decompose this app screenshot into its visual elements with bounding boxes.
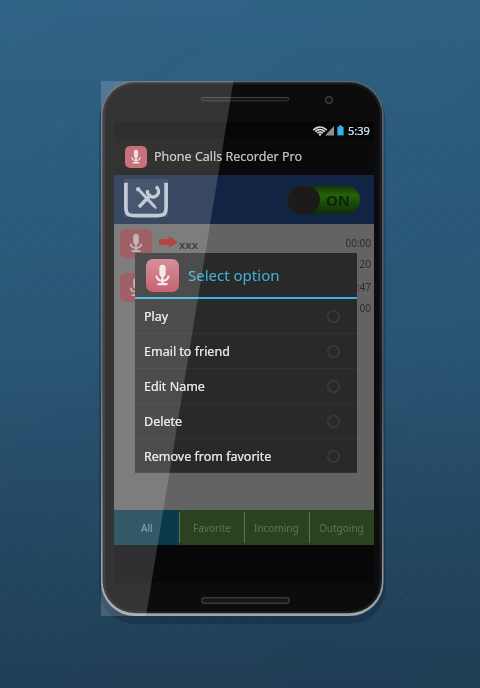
staticText: Phone Calls Recorder Pro [154,148,302,165]
button[interactable]: Favorite [179,510,244,545]
button[interactable]: ON [287,186,360,214]
staticText: 20 [359,257,371,271]
staticText: Favorite [193,521,231,535]
staticText: xxx [179,237,199,252]
button[interactable]: 01:47 [114,268,374,312]
staticText: Incoming [254,521,299,535]
button[interactable]: Remove from favorite [135,439,357,473]
button[interactable]: Play [135,299,357,334]
button[interactable]: xxx [114,224,374,268]
button[interactable]: Phone Calls Recorder Pro [114,138,374,175]
staticText: 00:00 [345,236,371,250]
staticText: All [141,521,153,535]
button[interactable]: Edit Name [135,369,357,404]
button[interactable]: Delete [135,404,357,439]
staticText: Remove from favorite [144,448,272,465]
staticText: 01:47 [345,280,371,294]
staticText: 5:39 [348,123,370,138]
staticText: Select option [188,265,280,285]
staticText: Outgoing [319,521,364,535]
staticText: ON [326,190,351,210]
button[interactable]: Outgoing [309,510,374,545]
staticText: 00 [359,301,371,315]
staticText: Play [144,308,169,325]
button[interactable]: Settings [120,177,172,221]
button[interactable]: All [114,510,179,545]
button[interactable]: Incoming [244,510,309,545]
staticText: Edit Name [144,378,205,395]
staticText: Delete [144,413,183,430]
button[interactable]: Email to friend [135,334,357,369]
staticText: Email to friend [144,343,230,360]
